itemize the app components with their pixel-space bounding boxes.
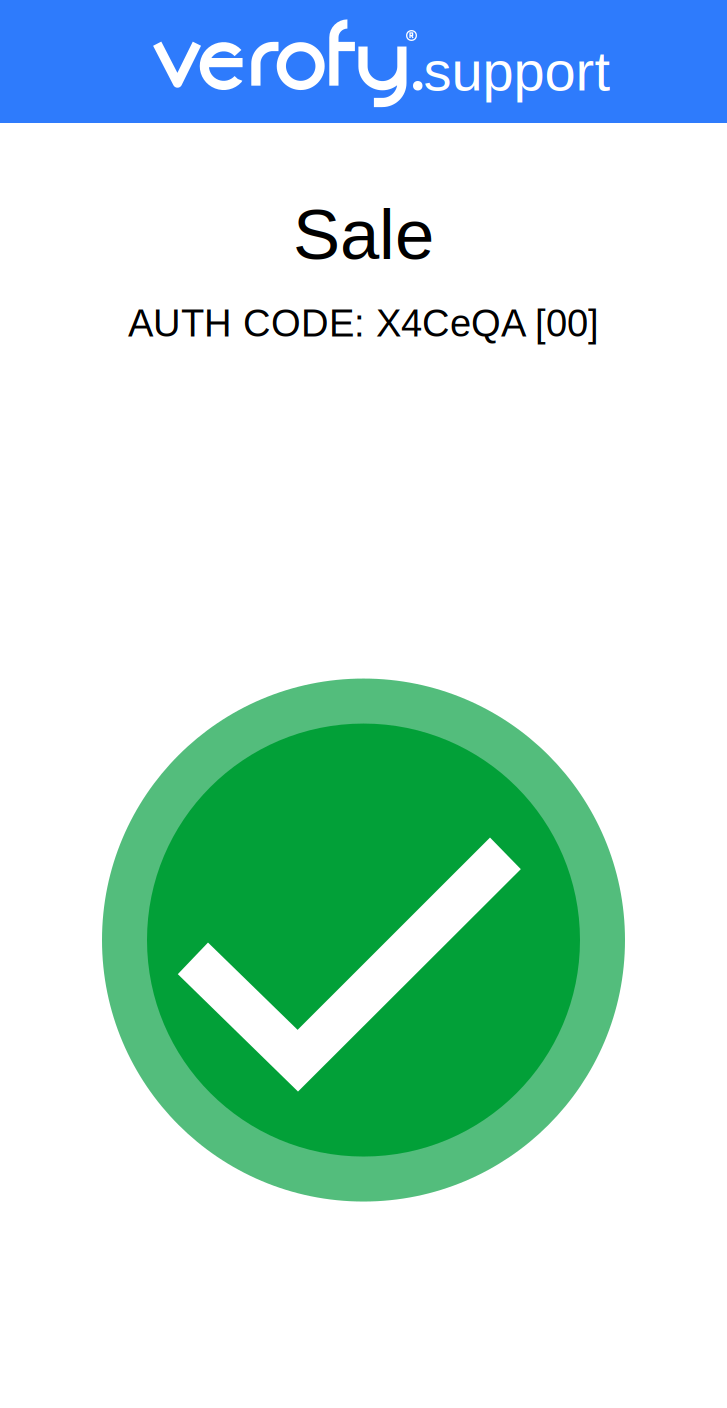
staticText: support xyxy=(423,40,610,102)
button[interactable]: verofy.support xyxy=(0,0,727,123)
staticText: AUTH CODE: X4CeQA [00] xyxy=(128,302,599,344)
staticText: Sale xyxy=(293,195,434,274)
